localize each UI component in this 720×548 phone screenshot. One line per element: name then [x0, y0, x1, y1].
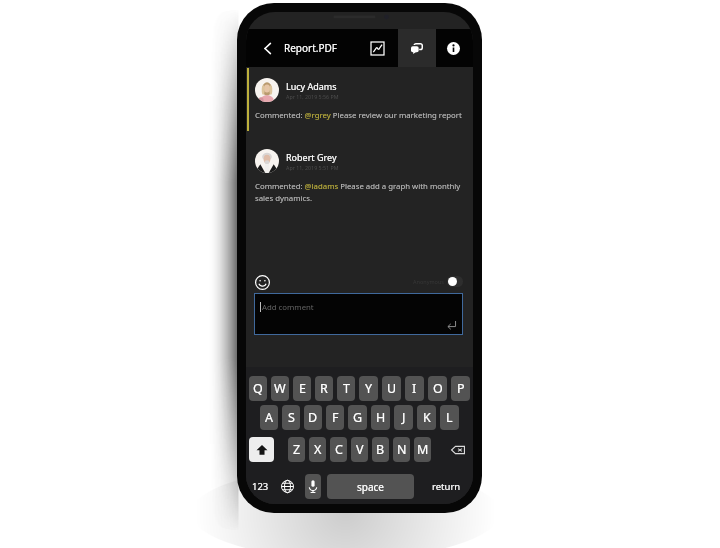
button[interactable]: return [426, 474, 466, 499]
button[interactable]: Preview [359, 29, 396, 67]
button[interactable]: G [348, 405, 367, 430]
button[interactable]: U [382, 376, 401, 401]
staticText: M [417, 441, 429, 458]
button[interactable]: P [451, 376, 470, 401]
button[interactable]: A [260, 405, 278, 430]
button[interactable]: D [304, 405, 322, 430]
button[interactable]: F [326, 405, 344, 430]
button[interactable]: Voice input [305, 474, 321, 499]
staticText: Lucy Adams [286, 80, 337, 92]
button[interactable]: V [351, 437, 368, 462]
staticText: C [335, 441, 343, 458]
button[interactable]: T [337, 376, 355, 401]
button[interactable]: Backspace [445, 437, 470, 462]
staticText: Apr 11, 2019 5:51 PM [286, 164, 339, 171]
staticText: Report.PDF [284, 41, 338, 55]
button[interactable]: X [309, 437, 326, 462]
button[interactable]: Z [288, 437, 305, 462]
staticText: U [387, 380, 397, 397]
button[interactable]: J [394, 405, 413, 430]
button[interactable]: Comments [398, 29, 436, 67]
staticText: N [397, 441, 407, 458]
staticText: 123 [252, 480, 269, 493]
staticText: Y [365, 380, 373, 397]
staticText: A [265, 409, 273, 426]
staticText: I [412, 380, 417, 397]
staticText: Q [253, 380, 263, 397]
button[interactable]: K [417, 405, 436, 430]
staticText: return [432, 480, 461, 493]
button[interactable]: 123 [248, 474, 272, 499]
staticText: W [274, 380, 286, 397]
staticText: K [423, 409, 431, 426]
button[interactable]: E [293, 376, 311, 401]
staticText: Z [293, 441, 301, 458]
staticText: O [433, 380, 443, 397]
button[interactable]: N [393, 437, 410, 462]
staticText: B [376, 441, 385, 458]
staticText: Add comment [262, 302, 314, 313]
button[interactable]: Change keyboard [276, 474, 298, 499]
staticText: L [446, 409, 453, 426]
button[interactable]: Shift [249, 437, 274, 462]
button[interactable]: Anonymous toggle [447, 276, 463, 287]
staticText: T [343, 380, 350, 397]
staticText: S [288, 409, 295, 426]
button[interactable]: I [405, 376, 424, 401]
button[interactable]: Y [359, 376, 378, 401]
staticText: Apr 11, 2019 5:56 PM [286, 93, 339, 100]
button[interactable]: Add comment [254, 293, 463, 335]
staticText: Robert Grey [286, 151, 337, 163]
staticText: D [308, 409, 318, 426]
button[interactable]: S [282, 405, 300, 430]
staticText: J [402, 409, 406, 426]
button[interactable]: L [440, 405, 459, 430]
button[interactable]: H [371, 405, 390, 430]
button[interactable]: Emoji [255, 275, 270, 290]
staticText: F [332, 409, 339, 426]
staticText: X [314, 441, 322, 458]
staticText: space [357, 480, 384, 494]
staticText: Anonymous [413, 278, 444, 285]
button[interactable]: B [372, 437, 389, 462]
staticText: R [320, 380, 328, 397]
button[interactable]: Info [436, 29, 471, 67]
staticText: V [356, 441, 364, 458]
button[interactable]: Q [249, 376, 267, 401]
button[interactable]: M [414, 437, 431, 462]
staticText: P [457, 380, 465, 397]
staticText: H [376, 409, 386, 426]
button[interactable]: C [330, 437, 347, 462]
button[interactable]: Back [253, 29, 281, 67]
button[interactable]: O [428, 376, 447, 401]
staticText: E [299, 380, 306, 397]
button[interactable]: space [327, 474, 414, 499]
button[interactable]: W [271, 376, 289, 401]
staticText: Commented: @ladams Please add a graph wi… [255, 181, 467, 203]
staticText: G [353, 409, 363, 426]
staticText: Commented: @rgrey Please review our mark… [255, 110, 462, 121]
button[interactable]: R [315, 376, 333, 401]
